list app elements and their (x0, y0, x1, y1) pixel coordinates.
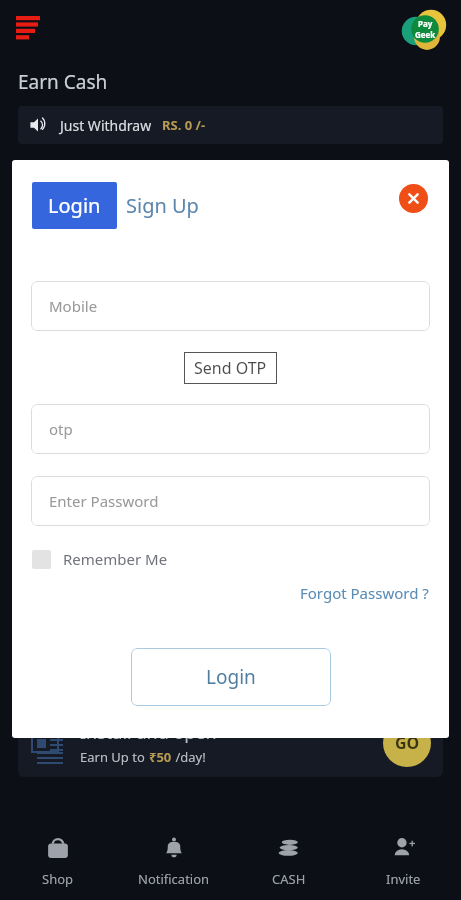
button[interactable]: Install and open (18, 475, 443, 543)
button[interactable]: Install and open (18, 319, 443, 387)
staticText: Install and open (80, 642, 217, 667)
staticText: ₹50 (149, 280, 172, 298)
staticText: Just Withdraw (60, 116, 152, 135)
button[interactable]: Install and open (18, 553, 443, 621)
button[interactable]: GO (383, 329, 431, 377)
staticText: Earn Up to (80, 280, 149, 298)
staticText: Mobile (49, 296, 98, 316)
button[interactable]: Forgot Password ? (280, 580, 449, 606)
staticText: Install and open (80, 564, 217, 589)
staticText: Earn Up to (80, 202, 149, 220)
button[interactable]: Install and open (18, 709, 443, 777)
staticText: Geek (415, 29, 436, 40)
staticText: Earn Up to (80, 670, 149, 688)
staticText: otp (49, 419, 73, 439)
button[interactable]: Login (131, 648, 331, 706)
staticText: /day! (172, 280, 206, 298)
staticText: Shop (42, 870, 74, 888)
staticText: RS. 0 /- (162, 116, 206, 134)
button[interactable]: Enter Password (31, 476, 430, 526)
button[interactable]: Invite (346, 816, 461, 900)
button[interactable]: GO (383, 719, 431, 767)
staticText: Earn Up to (80, 514, 149, 532)
staticText: Install and open (80, 174, 217, 199)
button[interactable]: Send OTP (184, 352, 277, 384)
staticText: Login (48, 192, 101, 219)
staticText: ₹50 (149, 748, 172, 766)
staticText: Earn Up to (80, 748, 149, 766)
button[interactable]: GO (383, 407, 431, 455)
staticText: /day! (172, 202, 206, 220)
button[interactable]: CASH (231, 816, 346, 900)
button[interactable]: Login (32, 182, 117, 229)
staticText: /day! (172, 358, 206, 376)
button[interactable]: Install and open (18, 397, 443, 465)
staticText: /day! (172, 514, 206, 532)
staticText: Login (206, 664, 256, 690)
staticText: Notification (138, 870, 210, 888)
staticText: Sign Up (126, 192, 199, 219)
button[interactable]: Sign Up (117, 182, 208, 229)
button[interactable]: GO (383, 563, 431, 611)
staticText: Send OTP (194, 357, 267, 379)
staticText: Install and open (80, 330, 217, 355)
button[interactable]: Menu (14, 14, 44, 44)
button[interactable]: GO (383, 173, 431, 221)
button[interactable]: Install and open (18, 163, 443, 231)
button[interactable]: otp (31, 404, 430, 454)
button[interactable]: PayGeek logo (401, 6, 447, 52)
button[interactable]: GO (383, 485, 431, 533)
staticText: /day! (172, 748, 206, 766)
staticText: Install and open (80, 486, 217, 511)
staticText: Earn Cash (18, 69, 108, 95)
button[interactable]: GO (383, 251, 431, 299)
staticText: CASH (272, 870, 306, 888)
staticText: Remember Me (63, 549, 168, 569)
button[interactable]: Shop (0, 816, 116, 900)
staticText: GO (395, 732, 420, 754)
button[interactable]: Install and open (18, 631, 443, 699)
staticText: /day! (172, 436, 206, 454)
staticText: ₹50 (149, 514, 172, 532)
staticText: Invite (386, 870, 421, 888)
staticText: Earn Up to (80, 436, 149, 454)
button[interactable]: Notification (116, 816, 231, 900)
button[interactable]: Just Withdraw (18, 106, 443, 144)
staticText: ₹50 (149, 436, 172, 454)
staticText: Install and open (80, 720, 217, 745)
staticText: Pay (418, 18, 433, 29)
staticText: GO (395, 264, 420, 286)
staticText: Enter Password (49, 491, 159, 511)
button[interactable]: Mobile (31, 281, 430, 331)
staticText: ₹50 (149, 202, 172, 220)
staticText: GO (395, 186, 420, 208)
staticText: Forgot Password ? (300, 583, 429, 603)
button[interactable]: Remember Me (32, 549, 449, 569)
button[interactable]: Close (399, 184, 428, 213)
button[interactable]: Install and open (18, 241, 443, 309)
staticText: GO (395, 576, 420, 598)
